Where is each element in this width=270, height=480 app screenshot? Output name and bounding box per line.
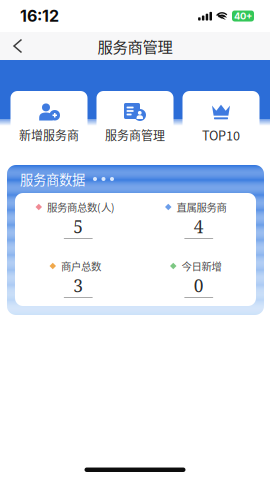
staticText: 5 bbox=[73, 215, 83, 238]
button[interactable]: 新增服务商 bbox=[10, 91, 87, 151]
staticText: 16:12 bbox=[20, 6, 59, 26]
staticText: 40+ bbox=[234, 10, 252, 22]
staticText: TOP10 bbox=[202, 126, 240, 144]
staticText: 服务商总数(人) bbox=[47, 199, 115, 215]
staticText: 3 bbox=[73, 274, 83, 297]
staticText: 商户总数 bbox=[61, 258, 101, 274]
staticText: 4 bbox=[194, 215, 204, 238]
staticText: 服务商管理 bbox=[105, 126, 165, 144]
button[interactable]: 服务商管理 bbox=[96, 91, 173, 151]
staticText: 新增服务商 bbox=[19, 126, 79, 144]
staticText: 0 bbox=[194, 274, 204, 297]
button[interactable]: TOP10 bbox=[182, 91, 259, 151]
staticText: 直属服务商 bbox=[176, 199, 226, 215]
button[interactable]: Back bbox=[0, 32, 31, 59]
staticText: 服务商管理 bbox=[97, 35, 172, 57]
staticText: 服务商数据 bbox=[20, 169, 85, 189]
staticText: 今日新增 bbox=[181, 258, 221, 274]
